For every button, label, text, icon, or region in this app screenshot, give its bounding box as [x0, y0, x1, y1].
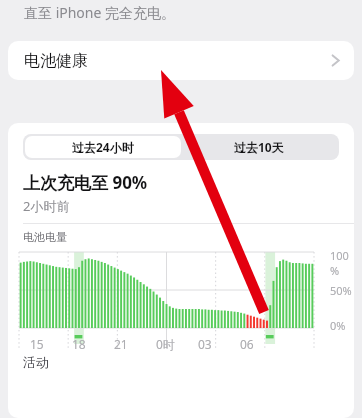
staticText: 电池电量: [23, 230, 67, 244]
button[interactable]: 过去24小时: [25, 136, 181, 158]
staticText: 03: [198, 336, 212, 352]
staticText: 06: [240, 336, 254, 352]
staticText: 电池健康: [24, 51, 88, 71]
staticText: 15: [30, 336, 44, 352]
button[interactable]: 过去10天: [181, 136, 337, 158]
staticText: 上次充电至 90%: [23, 171, 148, 194]
staticText: 21: [114, 336, 128, 352]
other: 电池健康详情: [331, 53, 340, 68]
staticText: 2小时前: [23, 197, 70, 215]
staticText: 100%: [330, 248, 354, 278]
staticText: 活动: [23, 354, 49, 370]
button[interactable]: 电池健康: [8, 41, 354, 80]
staticText: 0%: [330, 318, 346, 333]
staticText: 直至 iPhone 完全充电。: [24, 3, 176, 22]
staticText: 18: [72, 336, 86, 352]
staticText: 50%: [330, 283, 352, 298]
staticText: 0时: [156, 336, 175, 352]
staticText: 过去10天: [234, 139, 284, 155]
staticText: 过去24小时: [72, 139, 134, 155]
